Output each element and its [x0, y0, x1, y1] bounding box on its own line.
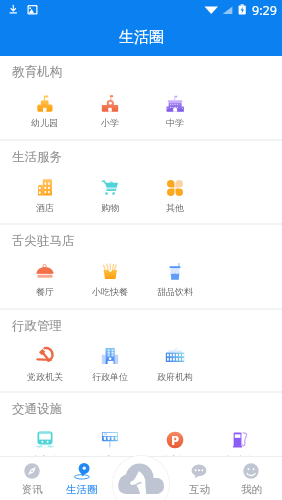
button[interactable]: 党政机关 [12, 340, 77, 382]
staticText: 酒店 [36, 202, 54, 213]
button[interactable]: 甜品饮料 [142, 255, 207, 297]
staticText: 党政机关 [27, 371, 63, 382]
button[interactable]: 政府机构 [142, 340, 207, 382]
button[interactable]: 中学 [142, 86, 207, 128]
other: 首页 [111, 454, 171, 500]
button[interactable]: 小吃快餐 [77, 255, 142, 297]
button[interactable]: P [142, 423, 207, 465]
staticText: 加油站 [226, 454, 253, 465]
staticText: 资讯 [22, 483, 43, 496]
staticText: 幼儿园 [31, 117, 58, 128]
button[interactable]: 汽车站 [77, 423, 142, 465]
button[interactable]: 行政单位 [77, 340, 142, 382]
button[interactable]: 小学 [77, 86, 142, 128]
staticText: 生活圈 [119, 28, 164, 47]
staticText: 餐厅 [36, 286, 54, 297]
button[interactable]: 加油站 [207, 423, 272, 465]
button[interactable]: 幼儿园 [12, 86, 77, 128]
staticText: P [171, 431, 180, 449]
staticText: 汽车站 [96, 454, 123, 465]
button[interactable]: 购物 [77, 171, 142, 213]
button[interactable]: 生活圈 [59, 463, 105, 496]
staticText: 9:29 [252, 2, 277, 19]
staticText: 中学 [166, 117, 184, 128]
staticText: 小吃快餐 [92, 286, 128, 297]
staticText: 行政单位 [92, 371, 128, 382]
staticText: 购物 [101, 202, 119, 213]
button[interactable]: 餐厅 [12, 255, 77, 297]
button[interactable]: 我的 [228, 463, 274, 496]
staticText: 互动 [189, 483, 210, 496]
staticText: 行政管理 [12, 318, 62, 334]
staticText: 其他 [166, 202, 184, 213]
staticText: 政府机构 [157, 371, 193, 382]
staticText: 交通设施 [12, 401, 62, 417]
staticText: 火车站 [31, 454, 58, 465]
staticText: 小学 [101, 117, 119, 128]
button[interactable]: 互动 [176, 463, 222, 496]
staticText: 生活服务 [12, 149, 62, 165]
staticText: 我的 [241, 483, 262, 496]
staticText: 甜品饮料 [157, 286, 193, 297]
staticText: 教育机构 [12, 64, 62, 80]
button[interactable]: 酒店 [12, 171, 77, 213]
staticText: 舌尖驻马店 [12, 233, 75, 249]
button[interactable]: 火车站 [12, 423, 77, 465]
staticText: 生活圈 [66, 483, 98, 496]
button[interactable]: 其他 [142, 171, 207, 213]
button[interactable]: 资讯 [9, 463, 55, 496]
staticText: 停车场 [161, 454, 188, 465]
